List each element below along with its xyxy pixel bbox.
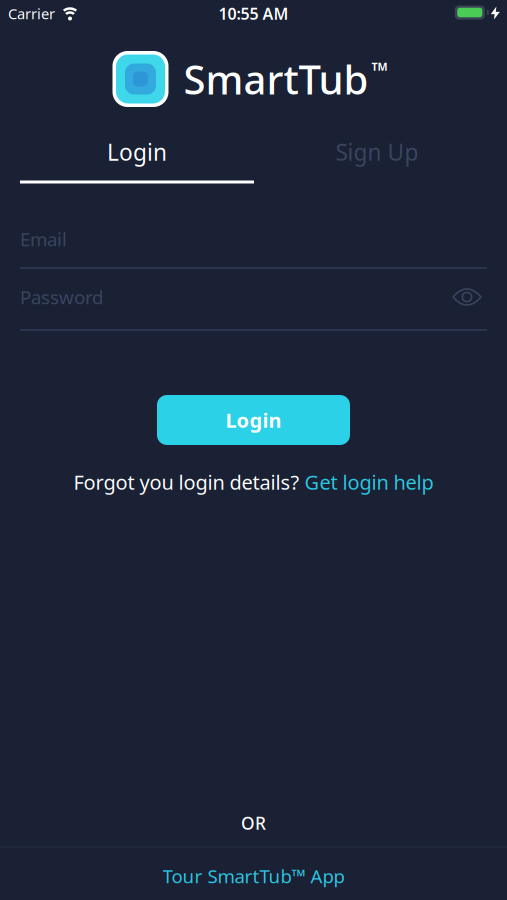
button[interactable]: Password	[20, 277, 487, 317]
button[interactable]: Tour SmartTub™ App	[162, 861, 344, 891]
staticText: Login	[107, 137, 167, 167]
button[interactable]: Sign Up	[260, 135, 494, 169]
staticText: Forgot you login details?	[73, 469, 304, 495]
staticText: Tour SmartTub™ App	[162, 864, 344, 888]
staticText: Carrier	[8, 4, 55, 23]
button[interactable]: Login	[20, 135, 254, 169]
staticText: Get login help	[304, 469, 433, 495]
button[interactable]: Login	[157, 395, 350, 445]
staticText: OR	[241, 811, 266, 834]
staticText: Login	[225, 407, 281, 433]
staticText: Password	[20, 285, 103, 309]
staticText: 10:55 AM	[218, 3, 288, 24]
button[interactable]: Get login help	[304, 469, 433, 495]
staticText: Sign Up	[335, 137, 418, 167]
staticText: SmartTub	[183, 52, 368, 105]
button[interactable]: Email	[20, 219, 487, 259]
staticText: Email	[20, 227, 67, 251]
button[interactable]: Show password	[452, 287, 482, 307]
staticText: TM	[371, 59, 387, 74]
